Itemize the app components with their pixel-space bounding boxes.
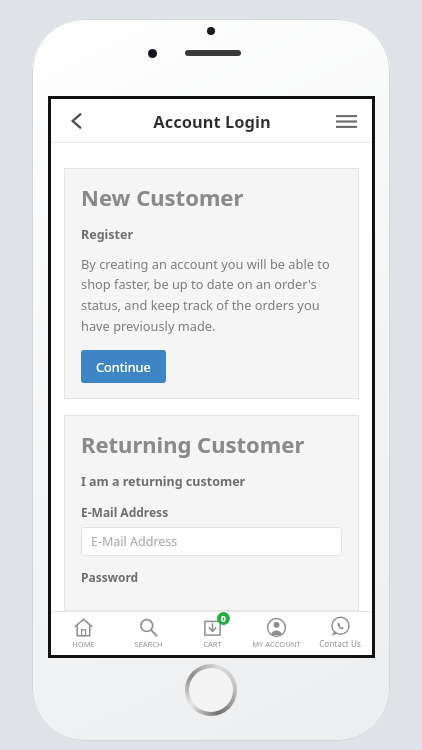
button[interactable]: Menu <box>326 101 366 141</box>
button[interactable]: MY ACCOUNT <box>244 611 308 655</box>
staticText: 0 <box>221 613 226 624</box>
button[interactable]: Back <box>57 101 97 141</box>
staticText: Returning Customer <box>81 429 305 459</box>
staticText: HOME <box>72 639 95 649</box>
staticText: New Customer <box>81 182 244 212</box>
staticText: Password <box>81 569 139 585</box>
staticText: E-Mail Address <box>81 504 169 520</box>
button[interactable]: Continue <box>81 350 166 383</box>
staticText: Contact Us <box>319 638 361 649</box>
staticText: CART <box>203 639 222 649</box>
staticText: Continue <box>96 358 151 375</box>
button[interactable]: E-Mail Address <box>81 527 342 556</box>
staticText: SEARCH <box>134 639 163 649</box>
staticText: Register <box>81 226 134 243</box>
button[interactable]: HOME <box>51 611 116 655</box>
staticText: E-Mail Address <box>91 533 178 550</box>
staticText: I am a returning customer <box>81 473 246 490</box>
button[interactable]: 0 <box>180 611 244 655</box>
staticText: MY ACCOUNT <box>252 639 301 649</box>
staticText: By creating an account you will be able … <box>81 255 342 335</box>
button[interactable]: Contact Us <box>308 611 372 655</box>
button[interactable]: SEARCH <box>116 611 180 655</box>
staticText: Account Login <box>153 110 271 132</box>
